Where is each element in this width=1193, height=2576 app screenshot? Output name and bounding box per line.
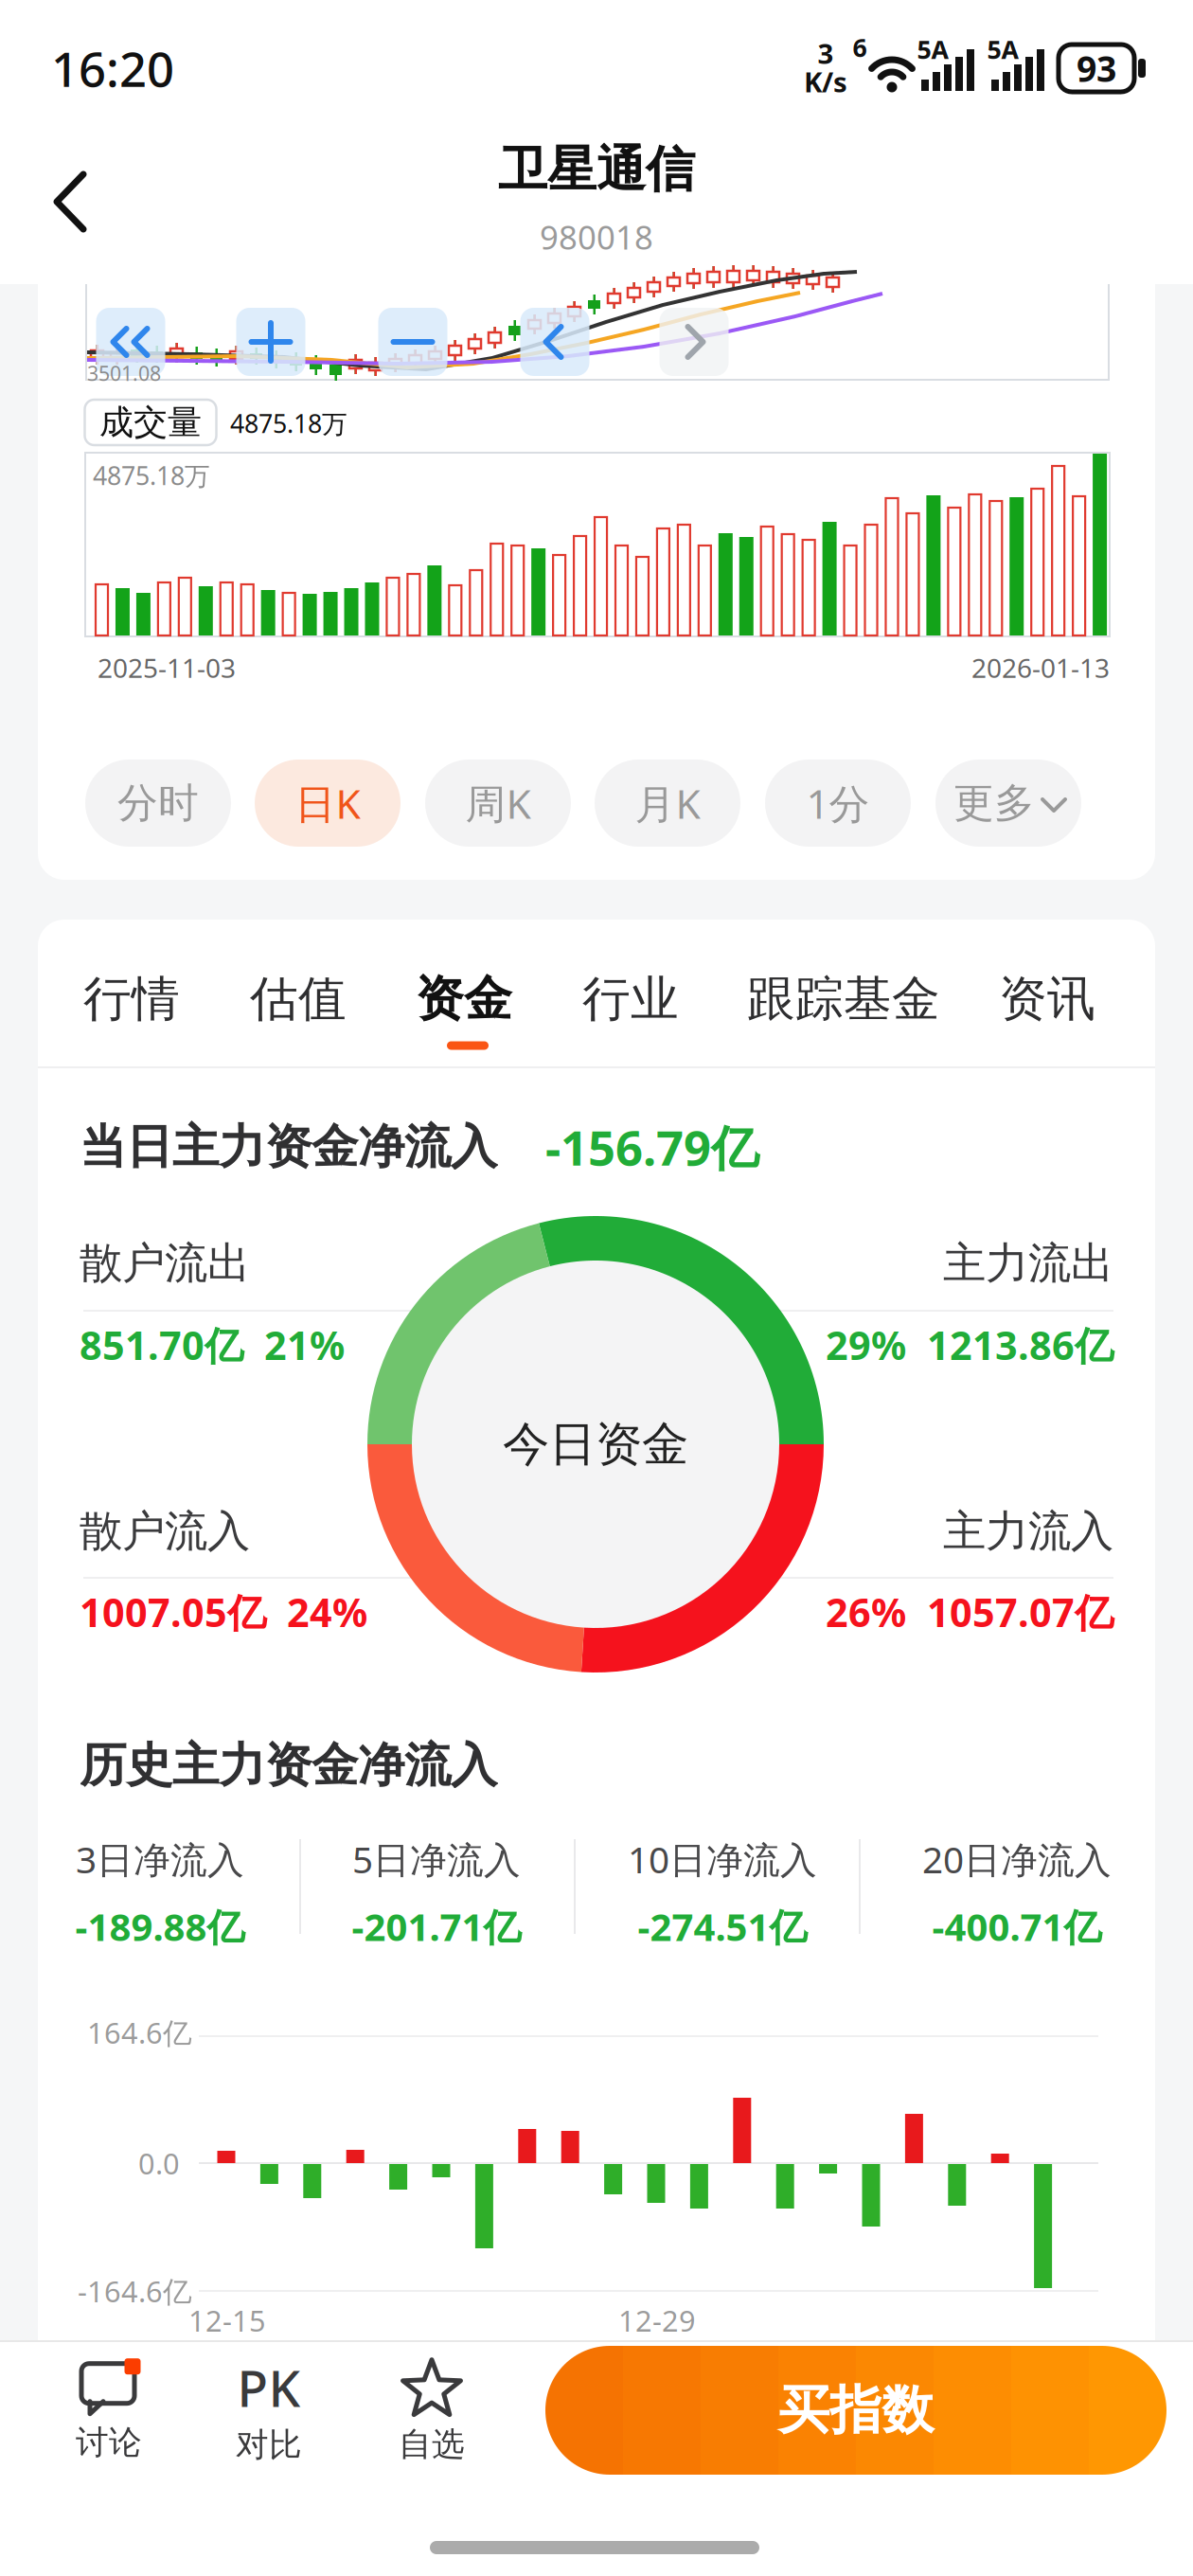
- button[interactable]: 跟踪基金: [747, 970, 940, 1029]
- staticText: 3: [818, 35, 834, 72]
- staticText: 更多: [953, 778, 1035, 828]
- staticText: PK: [237, 2354, 301, 2421]
- staticText: 成交量: [99, 401, 202, 443]
- staticText: 980018: [540, 215, 653, 259]
- staticText: -164.6亿: [78, 2272, 192, 2310]
- button[interactable]: 分时: [85, 760, 231, 847]
- staticText: 历史主力资金净流入: [80, 1737, 497, 1794]
- button[interactable]: Pan right: [659, 308, 729, 376]
- staticText: 2026-01-13: [971, 650, 1110, 685]
- button[interactable]: Zoom out: [378, 308, 447, 376]
- button[interactable]: 成交量: [85, 400, 216, 445]
- button[interactable]: 资讯: [999, 970, 1095, 1029]
- staticText: 851.70亿 21%: [80, 1319, 345, 1371]
- staticText: 散户流出: [80, 1237, 250, 1290]
- staticText: 买指数: [778, 2378, 934, 2442]
- staticText: 估值: [250, 970, 347, 1029]
- staticText: 3501.08: [87, 360, 161, 386]
- staticText: -156.79亿: [545, 1115, 759, 1179]
- button[interactable]: 日K: [255, 760, 401, 847]
- staticText: 6: [853, 31, 867, 64]
- staticText: 164.6亿: [87, 2013, 192, 2052]
- button[interactable]: 讨论: [76, 2360, 142, 2463]
- staticText: 自选: [399, 2424, 465, 2465]
- staticText: 分时: [117, 778, 199, 828]
- staticText: 12-29: [618, 2301, 696, 2340]
- staticText: -274.51亿: [638, 1901, 807, 1951]
- staticText: 16:20: [51, 36, 174, 100]
- button[interactable]: 更多: [935, 760, 1081, 847]
- staticText: 5A: [987, 32, 1018, 66]
- button[interactable]: 周K: [425, 760, 571, 847]
- staticText: 3日净流入: [76, 1835, 244, 1883]
- button[interactable]: Zoom in: [236, 308, 305, 376]
- button[interactable]: 资金: [416, 970, 512, 1029]
- staticText: 周K: [465, 776, 531, 830]
- staticText: 1007.05亿 24%: [80, 1586, 367, 1638]
- staticText: 2025-11-03: [98, 650, 236, 685]
- staticText: -201.71亿: [352, 1901, 521, 1951]
- button[interactable]: Pan left fast: [96, 308, 165, 376]
- staticText: 卫星通信: [498, 139, 695, 200]
- staticText: 今日资金: [503, 1416, 688, 1473]
- staticText: 20日净流入: [922, 1835, 1112, 1883]
- staticText: 资金: [416, 970, 512, 1029]
- button[interactable]: Back: [42, 170, 98, 234]
- staticText: 10日净流入: [628, 1835, 817, 1883]
- button[interactable]: PK: [236, 2354, 302, 2465]
- staticText: 主力流入: [943, 1505, 1113, 1558]
- button[interactable]: 自选: [399, 2358, 465, 2465]
- staticText: 主力流出: [943, 1237, 1113, 1290]
- staticText: 日K: [295, 776, 360, 830]
- staticText: 12-15: [188, 2301, 266, 2340]
- staticText: 93: [1077, 45, 1116, 92]
- staticText: 散户流入: [80, 1505, 250, 1558]
- button[interactable]: 1分: [765, 760, 911, 847]
- button[interactable]: 估值: [250, 970, 347, 1029]
- staticText: 5A: [917, 32, 948, 66]
- staticText: 对比: [236, 2425, 302, 2465]
- staticText: -189.88亿: [75, 1901, 245, 1951]
- staticText: 跟踪基金: [747, 970, 940, 1029]
- staticText: 当日主力资金净流入: [80, 1118, 497, 1176]
- button[interactable]: 买指数: [545, 2346, 1166, 2475]
- button[interactable]: Pan left: [520, 308, 589, 376]
- button[interactable]: 行情: [83, 970, 180, 1029]
- staticText: 行情: [83, 970, 180, 1029]
- staticText: 1分: [806, 776, 870, 830]
- staticText: 5日净流入: [352, 1835, 521, 1883]
- staticText: 29% 1213.86亿: [826, 1319, 1113, 1371]
- staticText: 月K: [635, 776, 700, 830]
- staticText: 4875.18万: [93, 459, 210, 492]
- button[interactable]: 行业: [582, 970, 679, 1029]
- staticText: 0.0: [138, 2144, 180, 2182]
- staticText: 26% 1057.07亿: [826, 1586, 1113, 1638]
- staticText: 资讯: [999, 970, 1095, 1029]
- staticText: K/s: [804, 63, 847, 100]
- staticText: -400.71亿: [932, 1901, 1102, 1951]
- staticText: 讨论: [76, 2422, 142, 2463]
- button[interactable]: 月K: [595, 760, 740, 847]
- staticText: 4875.18万: [230, 407, 347, 440]
- staticText: 行业: [582, 970, 679, 1029]
